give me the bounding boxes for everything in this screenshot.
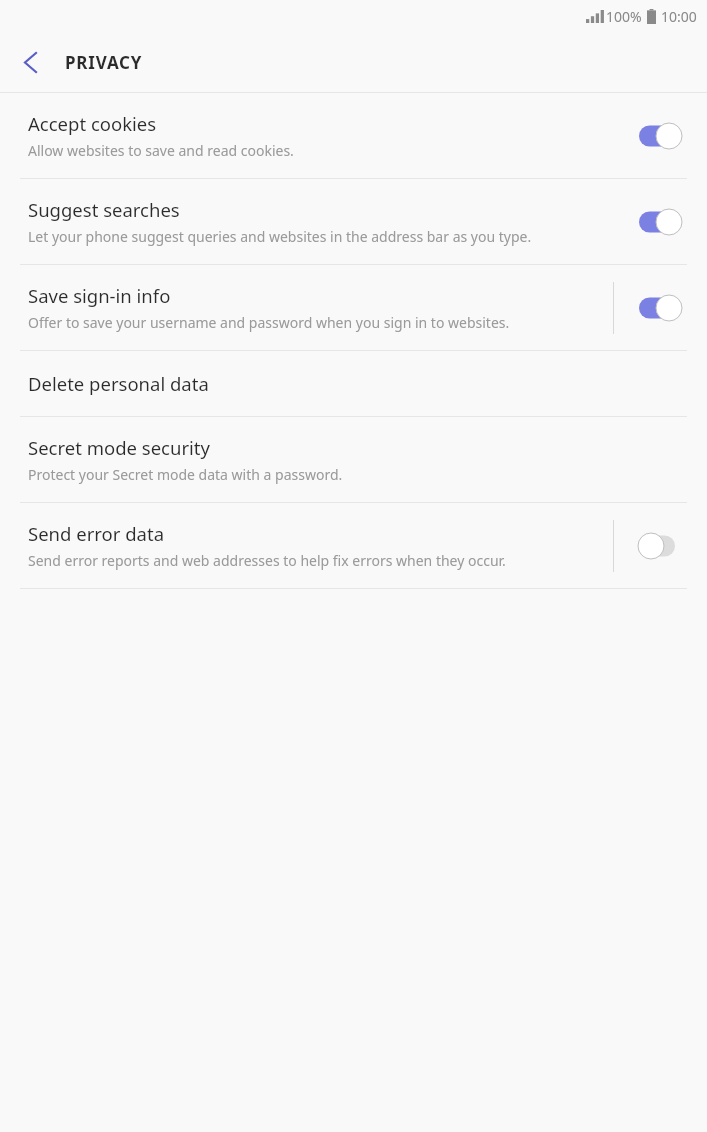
button[interactable]: Delete personal data bbox=[0, 351, 707, 416]
staticText: Let your phone suggest queries and websi… bbox=[28, 227, 532, 246]
staticText: PRIVACY bbox=[65, 51, 143, 74]
button[interactable]: Send error data bbox=[0, 503, 707, 588]
button[interactable]: Accept cookies bbox=[0, 93, 707, 178]
button[interactable]: Save sign-in info bbox=[0, 265, 707, 350]
button[interactable]: Secret mode security bbox=[0, 417, 707, 502]
button[interactable]: Toggle on bbox=[639, 120, 687, 152]
button[interactable]: Toggle off bbox=[639, 530, 687, 562]
staticText: Suggest searches bbox=[28, 197, 180, 222]
staticText: Delete personal data bbox=[28, 371, 209, 396]
button[interactable]: Suggest searches bbox=[0, 179, 707, 264]
staticText: Secret mode security bbox=[28, 435, 210, 460]
staticText: Save sign-in info bbox=[28, 283, 171, 308]
button[interactable]: Toggle on bbox=[639, 206, 687, 238]
staticText: Protect your Secret mode data with a pas… bbox=[28, 465, 343, 484]
staticText: Accept cookies bbox=[28, 111, 157, 136]
staticText: Send error data bbox=[28, 521, 165, 546]
staticText: 100% bbox=[606, 7, 642, 26]
staticText: Send error reports and web addresses to … bbox=[28, 551, 506, 570]
staticText: 10:00 bbox=[661, 7, 697, 26]
staticText: Allow websites to save and read cookies. bbox=[28, 141, 294, 160]
button[interactable]: Toggle on bbox=[639, 292, 687, 324]
button[interactable]: Back bbox=[12, 44, 48, 80]
staticText: Offer to save your username and password… bbox=[28, 313, 510, 332]
